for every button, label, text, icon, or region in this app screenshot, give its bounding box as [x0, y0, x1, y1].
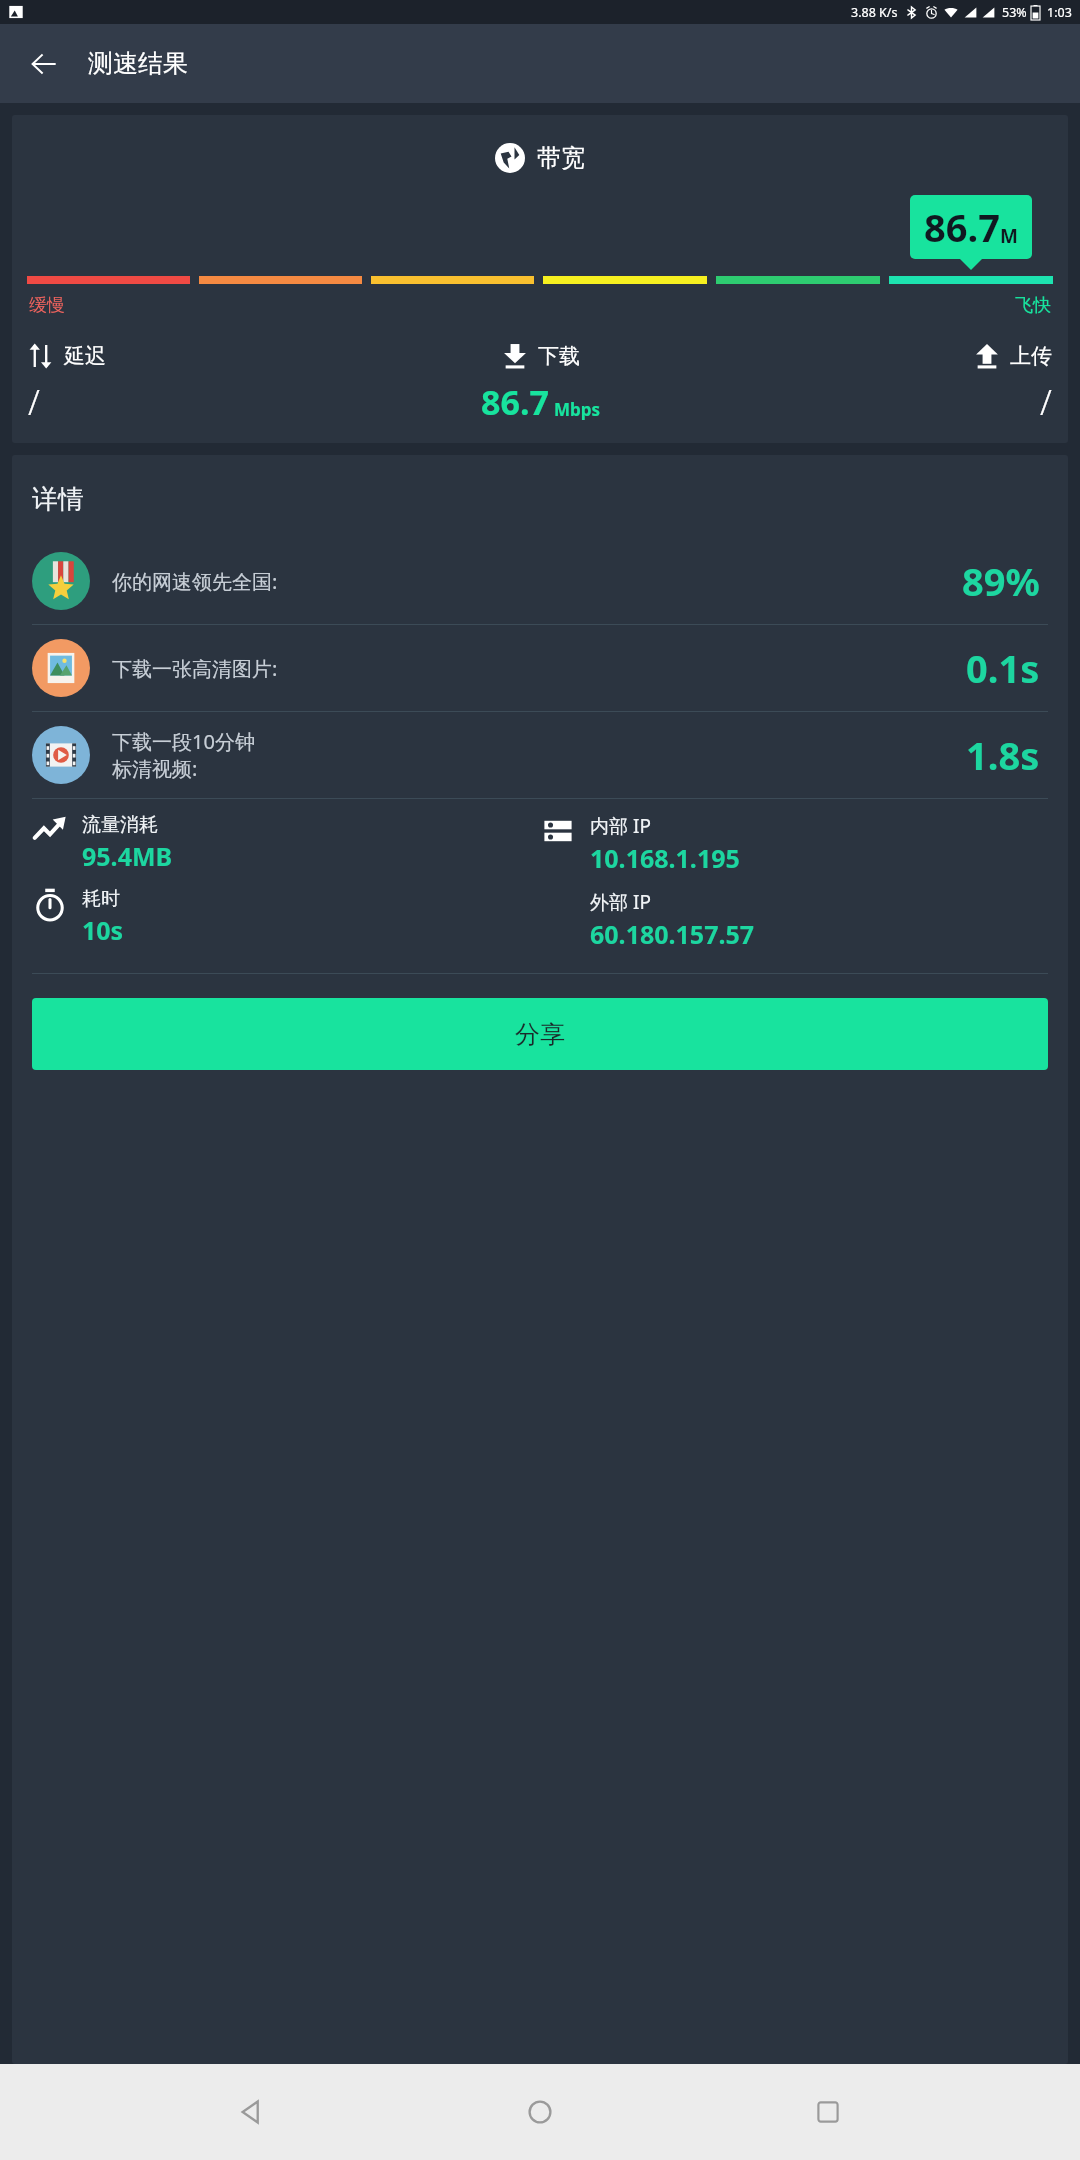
staticText: 53%: [1002, 4, 1027, 21]
staticText: 延迟: [64, 343, 106, 369]
staticText: 1.8s: [966, 729, 1040, 781]
staticText: 60.180.157.57: [590, 917, 755, 951]
staticText: 耗时: [82, 887, 120, 911]
staticText: 外部 IP: [590, 889, 651, 915]
button[interactable]: 分享: [32, 998, 1048, 1070]
staticText: 上传: [1010, 343, 1052, 369]
staticText: 1:03: [1047, 4, 1072, 21]
button[interactable]: 你的网速领先全国:: [32, 538, 1048, 624]
staticText: /: [28, 379, 40, 425]
staticText: /: [1040, 379, 1052, 425]
button[interactable]: 下载一张高清图片:: [32, 625, 1048, 711]
staticText: 详情: [32, 483, 84, 516]
staticText: 下载一张高清图片:: [112, 655, 278, 682]
staticText: 你的网速领先全国:: [112, 568, 278, 595]
staticText: 内部 IP: [590, 813, 651, 839]
staticText: 0.1s: [966, 642, 1040, 694]
staticText: 89%: [962, 555, 1040, 607]
staticText: 测速结果: [88, 48, 188, 79]
staticText: 标清视频:: [112, 755, 198, 782]
staticText: 下载一段10分钟: [112, 728, 255, 755]
staticText: 带宽: [537, 143, 585, 173]
button[interactable]: Back: [216, 2076, 288, 2148]
staticText: 流量消耗: [82, 813, 158, 837]
staticText: 分享: [515, 1019, 565, 1050]
staticText: 下载: [538, 343, 580, 369]
staticText: 10.168.1.195: [590, 841, 740, 875]
staticText: 95.4MB: [82, 839, 173, 873]
staticText: M: [1000, 223, 1018, 249]
button[interactable]: Back: [20, 40, 68, 88]
staticText: 3.88 K/s: [851, 4, 898, 21]
staticText: 10s: [82, 913, 124, 947]
staticText: 缓慢: [29, 294, 65, 317]
staticText: Mbps: [554, 398, 601, 421]
staticText: 86.7: [924, 201, 1000, 253]
staticText: 飞快: [1015, 294, 1051, 317]
staticText: 86.7: [481, 379, 549, 425]
button[interactable]: Recents: [792, 2076, 864, 2148]
button[interactable]: Home: [504, 2076, 576, 2148]
button[interactable]: 下载一段10分钟: [32, 712, 1048, 798]
